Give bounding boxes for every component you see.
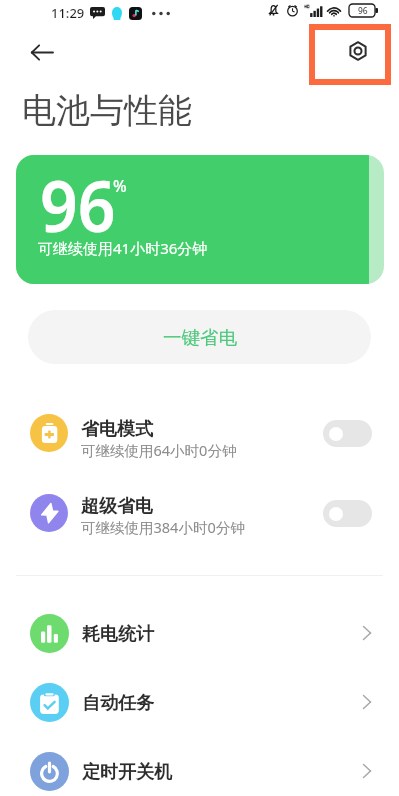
staticText: 11:29 (51, 4, 85, 22)
staticText: 定时开关机 (82, 761, 172, 784)
button[interactable]: 超级省电 (0, 485, 399, 541)
button[interactable]: 定时开关机 (0, 749, 399, 793)
button[interactable]: Toggle (323, 500, 372, 527)
staticText: 96 (358, 5, 368, 17)
staticText: 超级省电 (81, 495, 153, 518)
button[interactable]: Toggle (323, 420, 372, 447)
staticText: 省电模式 (81, 418, 153, 441)
button[interactable]: 自动任务 (0, 680, 399, 724)
button[interactable]: 省电模式 (0, 405, 399, 461)
staticText: 电池与性能 (22, 89, 192, 132)
staticText: 可继续使用384小时0分钟 (81, 517, 245, 537)
staticText: 一键省电 (163, 326, 237, 349)
staticText: % (113, 175, 127, 197)
staticText: 耗电统计 (82, 623, 154, 646)
button[interactable]: Back (18, 28, 66, 76)
button[interactable]: 一键省电 (28, 310, 371, 364)
staticText: 自动任务 (82, 692, 154, 715)
staticText: 可继续使用41小时36分钟 (38, 238, 208, 258)
staticText: 可继续使用64小时0分钟 (81, 440, 237, 460)
staticText: 96 (40, 156, 116, 253)
button[interactable]: Settings (315, 30, 385, 79)
button[interactable]: 耗电统计 (0, 611, 399, 655)
button[interactable]: 96 (16, 155, 384, 284)
